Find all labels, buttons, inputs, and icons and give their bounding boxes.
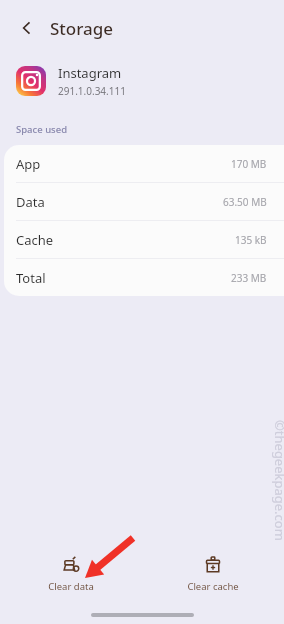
button[interactable]: Total <box>4 259 284 296</box>
staticText: App <box>16 155 41 173</box>
staticText: 233 MB <box>231 271 267 285</box>
staticText: Total <box>16 269 46 287</box>
staticText: 291.1.0.34.111 <box>58 84 126 98</box>
button[interactable]: App <box>4 145 284 182</box>
other: Clear cache <box>204 556 222 574</box>
button[interactable]: Cache <box>4 221 284 258</box>
staticText: Cache <box>16 231 54 249</box>
staticText: Clear cache <box>187 580 239 593</box>
staticText: ©thegeekpage.com <box>271 420 284 541</box>
staticText: Data <box>16 193 45 211</box>
staticText: 135 kB <box>235 233 267 247</box>
staticText: Instagram <box>58 64 122 82</box>
button[interactable]: Clear data <box>0 550 142 599</box>
staticText: 63.50 MB <box>223 195 267 209</box>
button[interactable]: Clear cache <box>142 550 284 599</box>
staticText: Storage <box>50 17 114 40</box>
other: Clear data <box>62 556 80 574</box>
staticText: Clear data <box>48 580 94 593</box>
button[interactable]: Back <box>14 15 40 41</box>
button[interactable]: Instagram <box>16 64 284 98</box>
button[interactable]: Data <box>4 183 284 220</box>
staticText: Space used <box>16 123 68 136</box>
staticText: 170 MB <box>231 157 267 171</box>
